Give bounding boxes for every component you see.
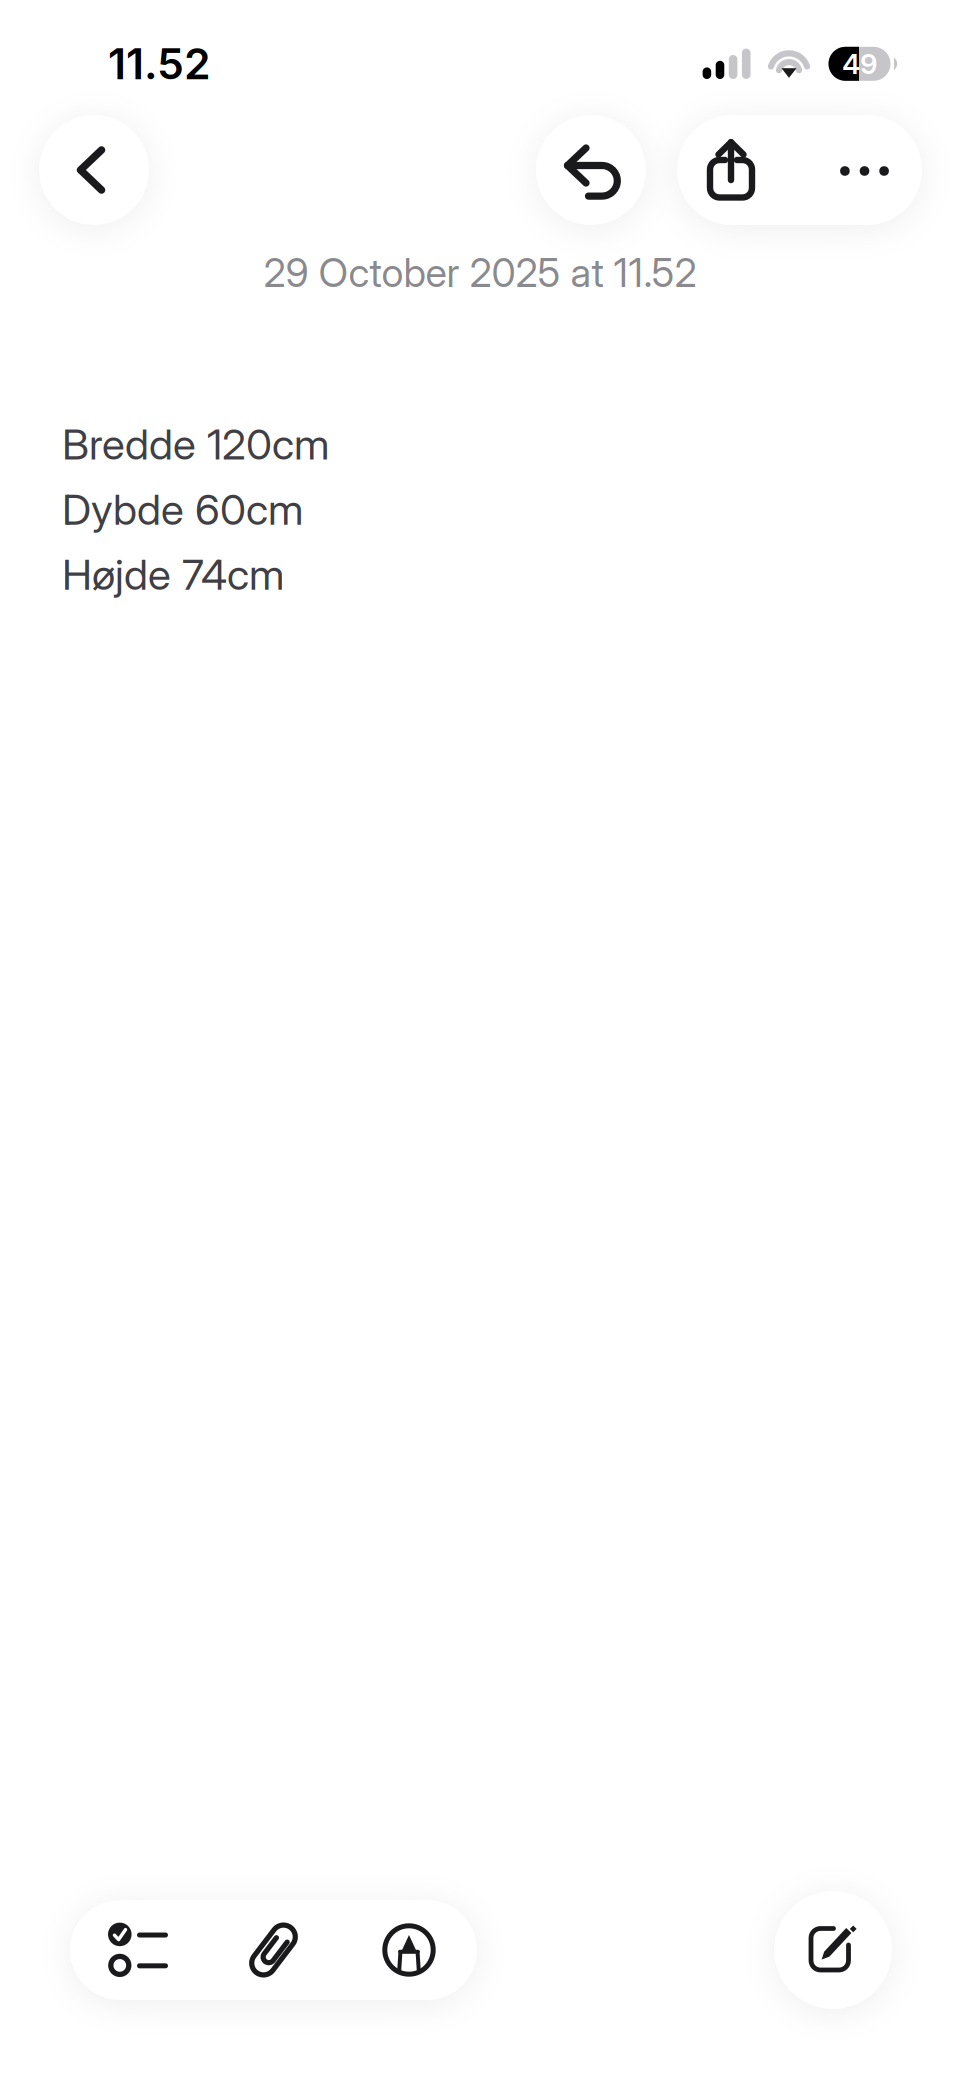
- button[interactable]: More options: [785, 115, 922, 225]
- staticText: 11.52: [108, 38, 211, 90]
- staticText: Bredde 120cm: [62, 419, 329, 470]
- button[interactable]: New note: [774, 1891, 892, 2009]
- button[interactable]: Back: [39, 115, 149, 225]
- button[interactable]: Markup: [341, 1900, 477, 2000]
- button[interactable]: Attach file: [206, 1900, 341, 2000]
- button[interactable]: Checklist: [70, 1900, 206, 2000]
- staticText: 29 October 2025 at 11.52: [263, 249, 696, 297]
- staticText: Dybde 60cm: [62, 484, 303, 535]
- button[interactable]: Share: [677, 115, 785, 225]
- staticText: 49: [842, 47, 878, 81]
- button[interactable]: Undo: [536, 115, 646, 225]
- staticText: Højde 74cm: [62, 549, 284, 600]
